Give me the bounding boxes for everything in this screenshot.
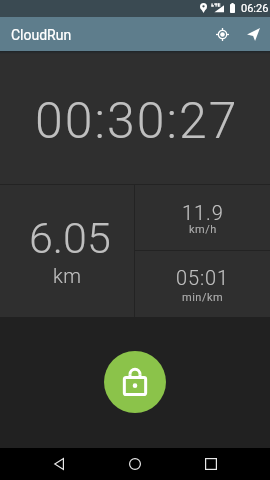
staticText: 06:26	[241, 2, 269, 15]
staticText: 6.05	[29, 213, 111, 263]
staticText: min/km	[182, 291, 224, 304]
staticText: 05:01	[176, 266, 230, 289]
staticText: km/h	[189, 223, 217, 236]
button[interactable]: Back	[21, 448, 97, 480]
button[interactable]: Home	[97, 448, 173, 480]
staticText: 00:30:27	[35, 92, 239, 151]
button[interactable]: My location	[207, 17, 237, 51]
button[interactable]: Navigate	[237, 17, 269, 51]
button[interactable]: Recents	[173, 448, 249, 480]
staticText: km	[53, 264, 82, 287]
button[interactable]: Lock	[104, 351, 166, 413]
staticText: 11.9	[182, 201, 224, 224]
staticText: CloudRun	[11, 27, 72, 43]
